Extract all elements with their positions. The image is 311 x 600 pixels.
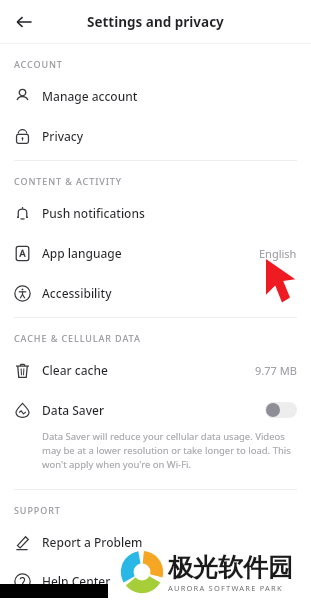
staticText: Manage account xyxy=(42,88,138,104)
staticText: AURORA SOFTWARE PARK xyxy=(168,583,283,593)
button[interactable]: Manage account xyxy=(0,76,311,116)
staticText: Accessibility xyxy=(42,285,112,301)
button[interactable]: Back xyxy=(8,6,40,38)
staticText: Data Saver xyxy=(42,402,104,418)
staticText: Report a Problem xyxy=(42,534,143,550)
button[interactable]: App language xyxy=(0,233,311,273)
staticText: SUPPORT xyxy=(14,504,61,516)
button[interactable]: Help Center xyxy=(0,562,311,600)
staticText: Settings and privacy xyxy=(87,13,224,31)
staticText: 极光软件园 xyxy=(168,552,293,583)
staticText: CONTENT & ACTIVITY xyxy=(14,175,122,187)
staticText: Data Saver will reduce your cellular dat… xyxy=(42,430,295,471)
staticText: 9.77 MB xyxy=(255,363,297,378)
staticText: English xyxy=(259,246,297,261)
button[interactable]: Accessibility xyxy=(0,273,311,313)
button[interactable]: Push notifications xyxy=(0,193,311,233)
button[interactable]: Data Saver xyxy=(0,390,311,430)
staticText: Help Center xyxy=(42,573,111,589)
button[interactable]: Report a Problem xyxy=(0,522,311,562)
staticText: ACCOUNT xyxy=(14,58,63,70)
staticText: Privacy xyxy=(42,128,84,144)
button[interactable]: Privacy xyxy=(0,116,311,156)
button[interactable]: Data Saver toggle xyxy=(265,402,297,418)
staticText: Clear cache xyxy=(42,362,108,378)
staticText: Push notifications xyxy=(42,205,145,221)
staticText: App language xyxy=(42,245,122,261)
button[interactable]: Clear cache xyxy=(0,350,311,390)
staticText: CACHE & CELLULAR DATA xyxy=(14,332,141,344)
